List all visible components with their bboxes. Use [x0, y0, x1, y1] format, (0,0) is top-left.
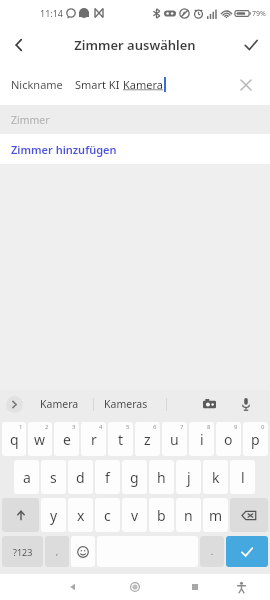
- button[interactable]: Backspace: [230, 498, 268, 532]
- staticText: h: [157, 468, 166, 487]
- staticText: ?123: [13, 546, 33, 558]
- button[interactable]: Kamera: [30, 390, 88, 418]
- staticText: d: [76, 468, 85, 487]
- staticText: m: [209, 506, 223, 525]
- staticText: 3: [72, 423, 76, 431]
- staticText: 79%: [252, 9, 266, 19]
- button[interactable]: p: [243, 422, 268, 456]
- staticText: y: [50, 506, 58, 525]
- staticText: u: [170, 430, 179, 449]
- button[interactable]: Accessibility: [228, 574, 254, 600]
- staticText: Nickname: [11, 77, 63, 92]
- button[interactable]: Shift: [2, 498, 39, 532]
- button[interactable]: Emoji: [71, 536, 95, 567]
- staticText: i: [200, 430, 204, 449]
- button[interactable]: v: [122, 498, 147, 532]
- staticText: t: [118, 430, 124, 449]
- staticText: 4: [99, 423, 103, 431]
- staticText: l: [241, 468, 245, 487]
- staticText: 7: [180, 423, 184, 431]
- button[interactable]: o: [216, 422, 241, 456]
- button[interactable]: i: [189, 422, 214, 456]
- staticText: k: [212, 468, 220, 487]
- staticText: b: [157, 506, 166, 525]
- button[interactable]: Back: [60, 574, 86, 600]
- staticText: q: [10, 430, 19, 449]
- staticText: s: [50, 468, 57, 487]
- staticText: Zimmer auswählen: [74, 36, 196, 54]
- button[interactable]: Home: [122, 574, 148, 600]
- staticText: 5: [126, 423, 130, 431]
- button[interactable]: q: [2, 422, 26, 456]
- button[interactable]: Enter: [226, 536, 268, 567]
- button[interactable]: m: [203, 498, 228, 532]
- button[interactable]: h: [149, 460, 174, 494]
- button[interactable]: f: [95, 460, 120, 494]
- button[interactable]: Clear: [233, 72, 259, 98]
- button[interactable]: a: [14, 460, 39, 494]
- staticText: f: [105, 468, 110, 487]
- staticText: n: [184, 506, 193, 525]
- staticText: v: [131, 506, 139, 525]
- button[interactable]: ,: [45, 536, 69, 567]
- button[interactable]: Kameras: [95, 390, 157, 418]
- staticText: c: [104, 506, 111, 525]
- button[interactable]: e: [54, 422, 79, 456]
- staticText: r: [91, 430, 97, 449]
- staticText: 9: [234, 423, 238, 431]
- staticText: 6: [153, 423, 157, 431]
- button[interactable]: x: [68, 498, 93, 532]
- staticText: z: [144, 430, 151, 449]
- button[interactable]: s: [41, 460, 66, 494]
- staticText: 1: [19, 423, 23, 431]
- staticText: Smart KI: [75, 77, 123, 92]
- button[interactable]: Recents: [182, 574, 208, 600]
- button[interactable]: c: [95, 498, 120, 532]
- button[interactable]: Expand: [6, 396, 23, 413]
- staticText: e: [63, 430, 71, 449]
- button[interactable]: r: [81, 422, 106, 456]
- button[interactable]: z: [135, 422, 160, 456]
- staticText: 2: [45, 423, 49, 431]
- staticText: g: [130, 468, 139, 487]
- staticText: p: [251, 430, 260, 449]
- button[interactable]: Confirm: [232, 26, 270, 64]
- button[interactable]: Voice input: [232, 390, 260, 418]
- button[interactable]: t: [108, 422, 133, 456]
- staticText: 0: [261, 423, 265, 431]
- staticText: Kameras: [104, 397, 148, 411]
- button[interactable]: Sticker: [195, 390, 223, 418]
- staticText: 11:14: [40, 7, 64, 19]
- staticText: Zimmer: [11, 113, 50, 127]
- button[interactable]: u: [162, 422, 187, 456]
- staticText: o: [224, 430, 233, 449]
- staticText: 8: [207, 423, 211, 431]
- staticText: w: [34, 430, 46, 449]
- button[interactable]: w: [28, 422, 52, 456]
- button[interactable]: n: [176, 498, 201, 532]
- button[interactable]: y: [41, 498, 66, 532]
- button[interactable]: d: [68, 460, 93, 494]
- button[interactable]: Zimmer hinzufügen: [0, 134, 270, 164]
- staticText: ,: [56, 546, 59, 557]
- staticText: x: [77, 506, 85, 525]
- button[interactable]: j: [176, 460, 201, 494]
- staticText: j: [187, 468, 191, 487]
- button[interactable]: g: [122, 460, 147, 494]
- button[interactable]: l: [230, 460, 255, 494]
- button[interactable]: k: [203, 460, 228, 494]
- staticText: Kamera: [40, 397, 79, 411]
- button[interactable]: Back: [0, 26, 38, 64]
- button[interactable]: ?123: [2, 536, 43, 567]
- staticText: Kamera: [123, 77, 163, 92]
- staticText: .: [211, 546, 214, 557]
- staticText: a: [23, 468, 31, 487]
- button[interactable]: b: [149, 498, 174, 532]
- staticText: Zimmer hinzufügen: [11, 142, 117, 157]
